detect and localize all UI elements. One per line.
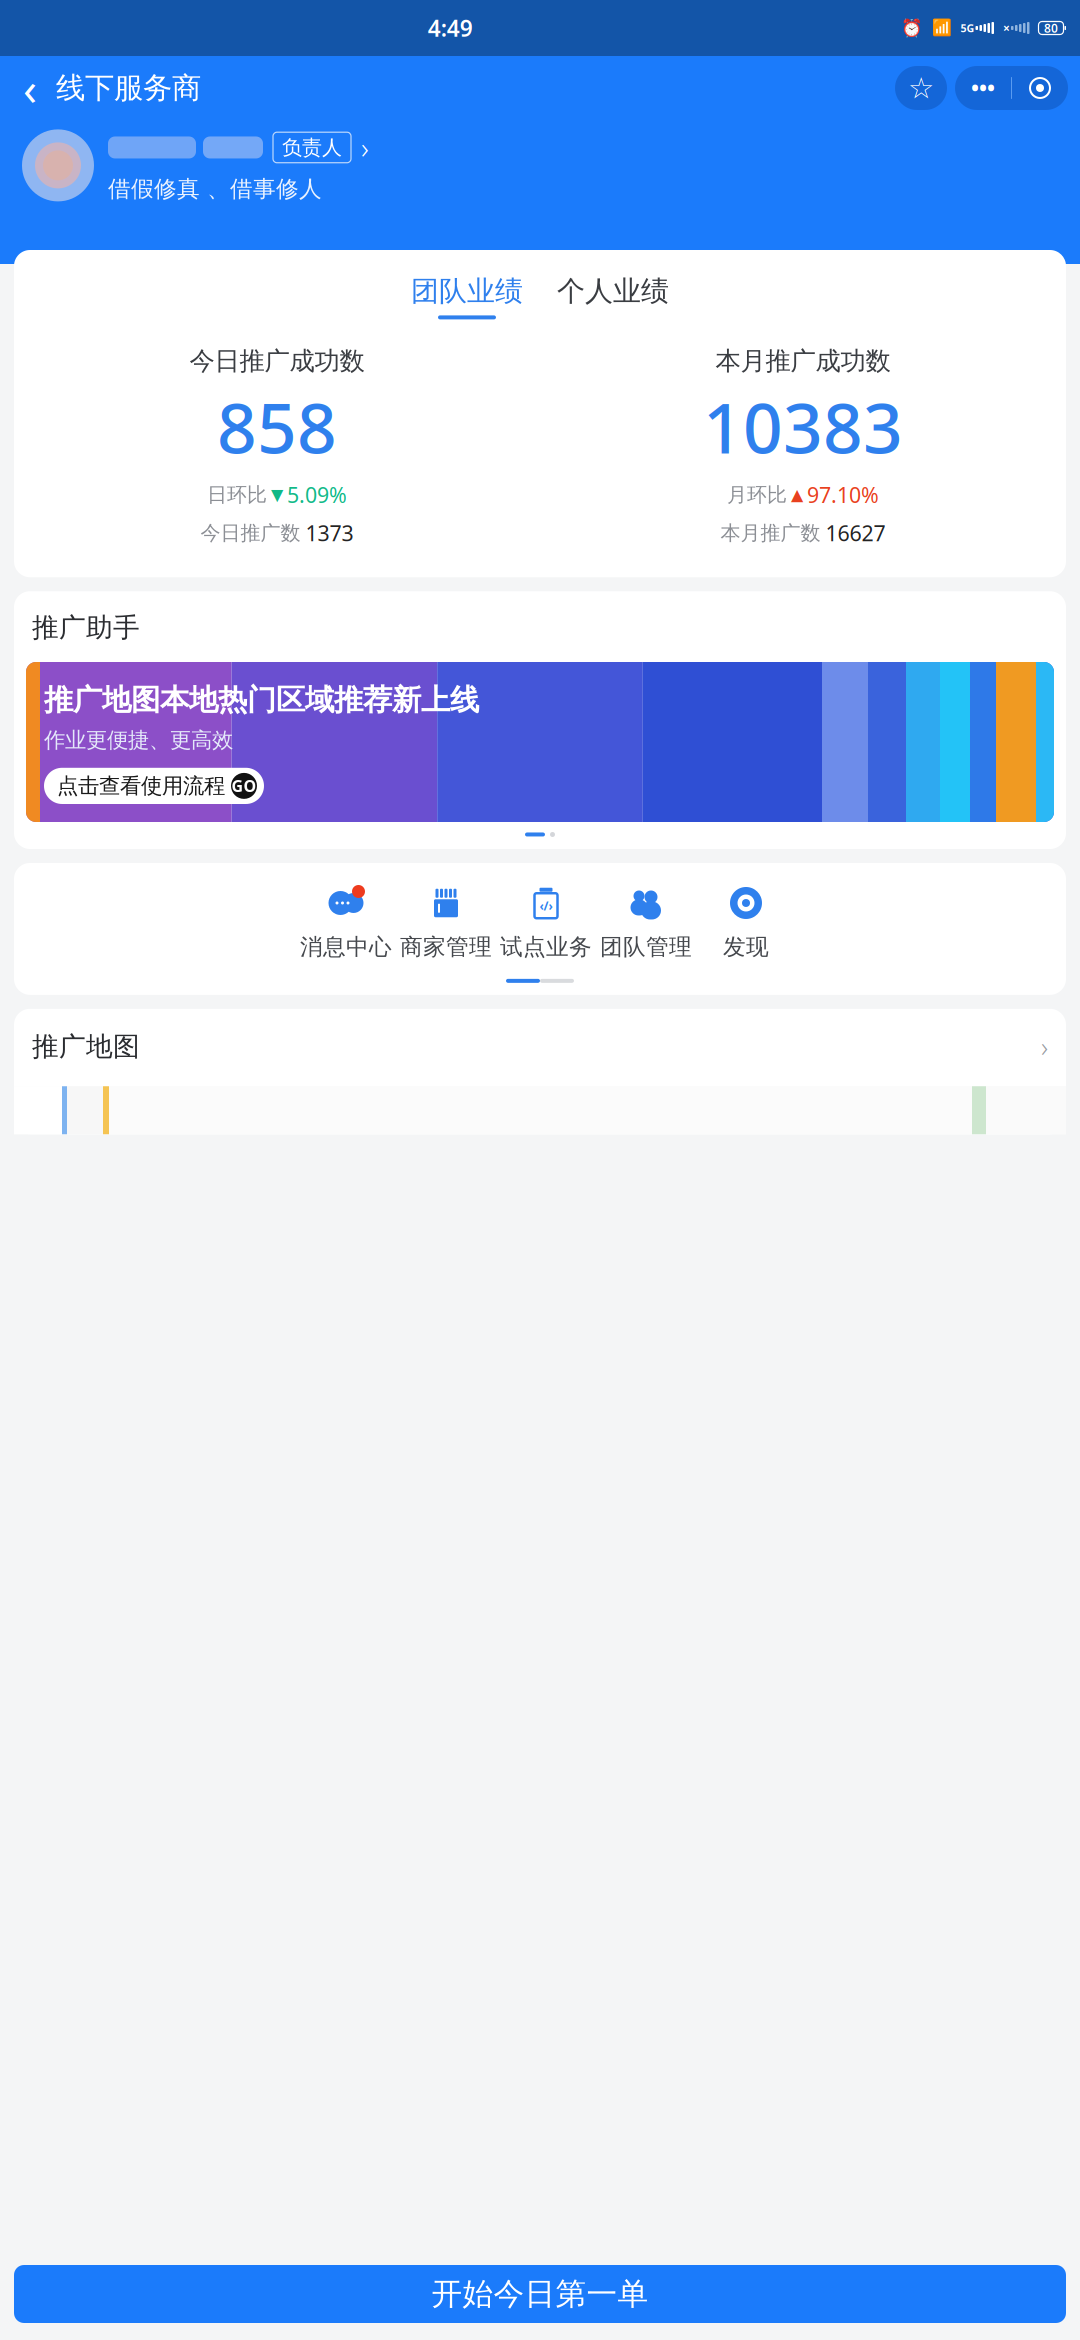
button[interactable]: Back: [8, 66, 52, 110]
button[interactable]: More: [955, 66, 1011, 110]
staticText: 10383: [703, 380, 903, 473]
button[interactable]: 团队管理: [596, 885, 696, 961]
staticText: 858: [217, 380, 337, 473]
button[interactable]: Favorite: [895, 66, 947, 110]
button[interactable]: 发现: [696, 885, 796, 961]
staticText: 月环比: [727, 482, 787, 507]
staticText: 团队管理: [600, 933, 692, 961]
button[interactable]: 负责人: [0, 126, 1080, 203]
staticText: 借假修真 、借事修人: [108, 175, 322, 203]
staticText: ‹/›: [539, 898, 552, 914]
button[interactable]: 开始今日第一单: [14, 2265, 1066, 2323]
staticText: 推广地图本地热门区域推荐新上线: [44, 682, 479, 718]
staticText: 商家管理: [400, 933, 492, 961]
staticText: 1373: [305, 519, 353, 547]
staticText: 本月推广成功数: [715, 345, 890, 376]
staticText: 作业更便捷、更高效: [44, 727, 233, 753]
staticText: 4:49: [428, 13, 473, 43]
button[interactable]: 团队业绩: [411, 274, 523, 319]
staticText: GO: [231, 775, 256, 796]
button[interactable]: Close: [1012, 66, 1068, 110]
staticText: 团队业绩: [411, 274, 523, 308]
staticText: 5.09%: [287, 481, 347, 509]
button[interactable]: 推广地图本地热门区域推荐新上线: [26, 662, 1054, 822]
staticText: 今日推广成功数: [189, 345, 364, 376]
staticText: 本月推广数: [720, 521, 820, 545]
staticText: 今日推广数: [200, 521, 300, 545]
button[interactable]: 推广地图: [0, 1009, 1080, 1134]
staticText: 16627: [825, 519, 885, 547]
staticText: ›: [361, 128, 369, 167]
staticText: 日环比: [207, 482, 267, 507]
staticText: ▼: [271, 486, 283, 504]
staticText: 负责人: [282, 135, 342, 160]
staticText: ×: [1003, 20, 1010, 36]
staticText: •••: [971, 74, 995, 102]
button[interactable]: ‹/›: [496, 885, 596, 961]
staticText: ›: [1041, 1029, 1048, 1064]
staticText: 消息中心: [300, 933, 392, 961]
staticText: 推广地图: [32, 1030, 140, 1063]
staticText: 📶: [931, 19, 951, 37]
staticText: 推广助手: [32, 611, 140, 644]
staticText: 97.10%: [807, 481, 879, 509]
staticText: ‹: [23, 58, 37, 118]
staticText: 开始今日第一单: [431, 2275, 648, 2313]
staticText: 试点业务: [500, 933, 592, 961]
staticText: 发现: [723, 933, 769, 961]
staticText: ⏰: [900, 18, 922, 38]
staticText: 5G: [960, 21, 974, 35]
button[interactable]: 商家管理: [396, 885, 496, 961]
button[interactable]: 个人业绩: [557, 274, 669, 319]
staticText: ▲: [791, 486, 803, 504]
staticText: 个人业绩: [557, 274, 669, 308]
staticText: ☆: [908, 71, 934, 105]
staticText: 点击查看使用流程: [57, 773, 225, 799]
button[interactable]: 消息中心: [296, 885, 396, 961]
staticText: 80: [1044, 20, 1058, 36]
staticText: 线下服务商: [56, 70, 201, 106]
